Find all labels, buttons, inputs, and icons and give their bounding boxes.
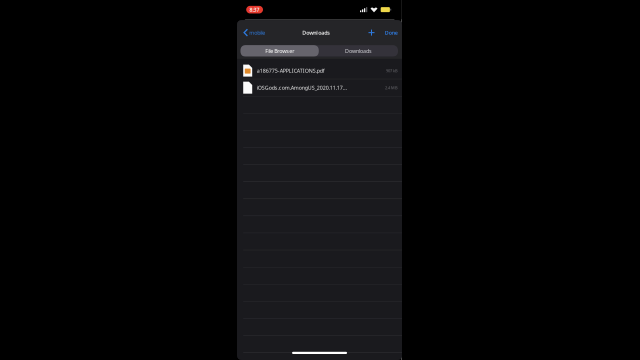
staticText: 2.4 MB <box>385 85 398 90</box>
staticText: iOSGods.com.AmongUS_2020.11.17… <box>257 84 347 91</box>
staticText: File Browser <box>265 47 294 54</box>
staticText: 907 kB <box>386 68 398 73</box>
button[interactable]: iOSGods.com.AmongUS_2020.11.17… <box>237 79 402 96</box>
button[interactable]: a186775-APPLICATIONS.pdf <box>237 62 402 79</box>
staticText: 8:37 <box>250 6 260 13</box>
staticText: Downloads <box>302 29 330 36</box>
staticText: mobile <box>249 29 265 36</box>
button[interactable]: Done <box>385 26 398 39</box>
staticText: a186775-APPLICATIONS.pdf <box>257 67 325 74</box>
button[interactable]: mobile <box>243 26 265 39</box>
button[interactable]: File Browser <box>240 45 319 57</box>
button[interactable]: Add <box>367 26 376 39</box>
button[interactable]: Downloads <box>319 45 398 57</box>
staticText: Downloads <box>345 47 372 54</box>
staticText: Done <box>385 29 398 36</box>
